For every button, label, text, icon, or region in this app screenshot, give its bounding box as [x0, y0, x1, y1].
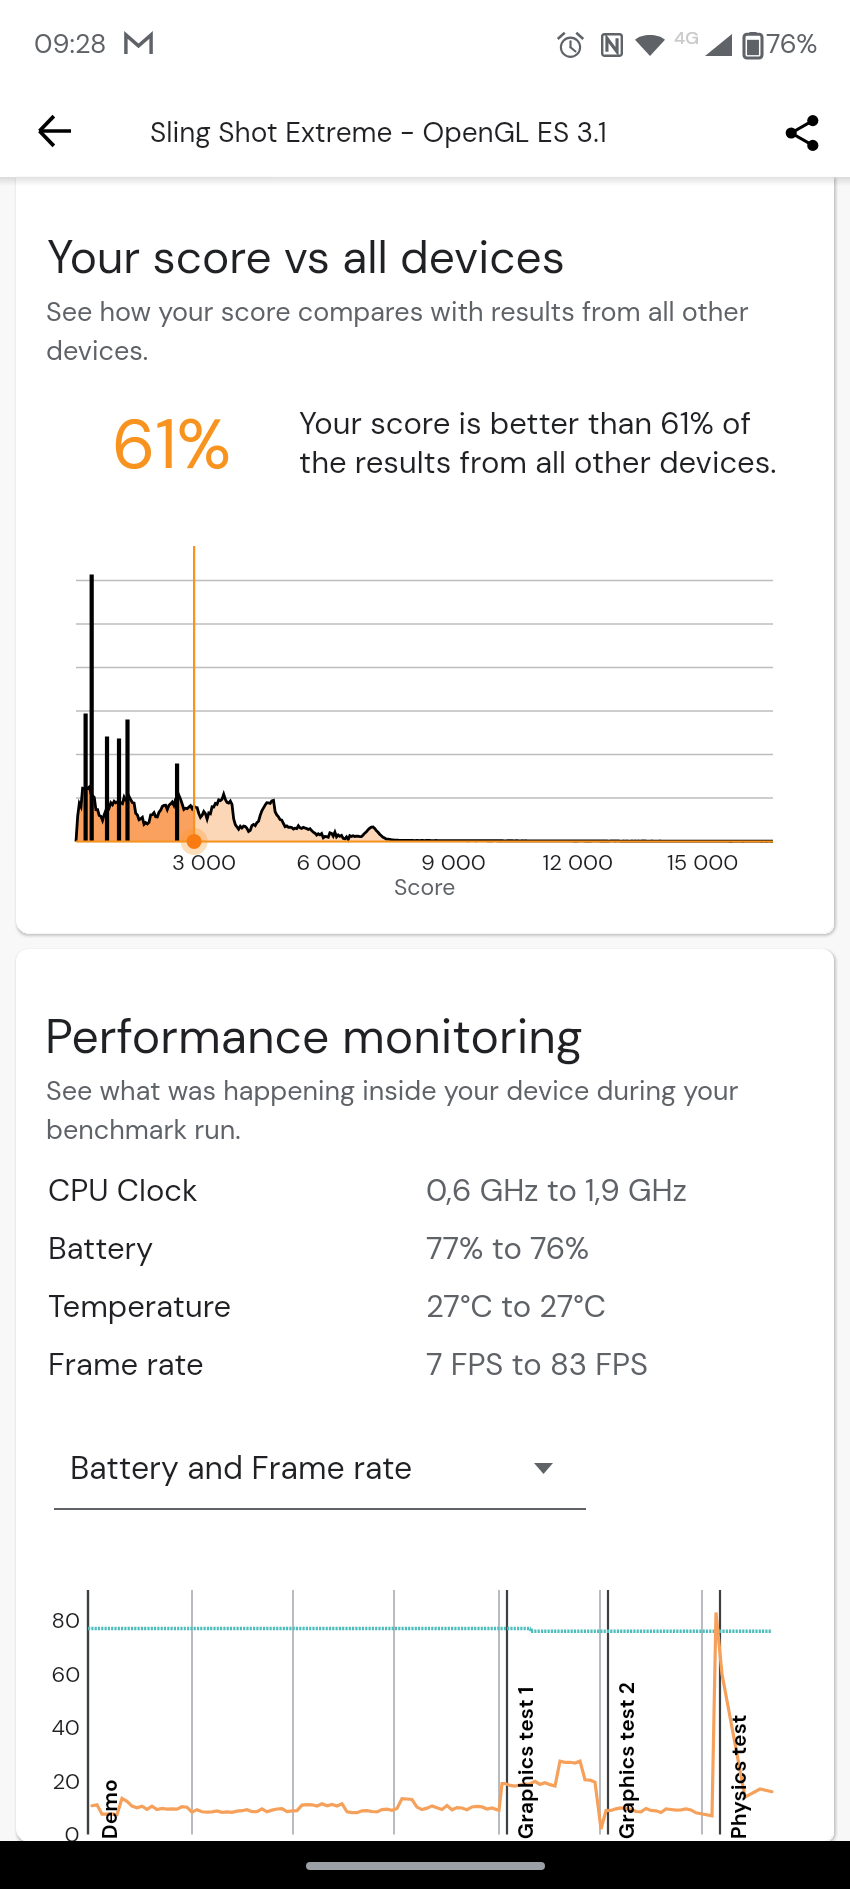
button[interactable]: Battery and Frame rate	[54, 1436, 586, 1500]
staticText: 61%	[112, 400, 232, 490]
staticText: Your score is better than 61% of the res…	[299, 403, 777, 483]
staticText: 76%	[766, 26, 818, 61]
staticText: Sling Shot Extreme - OpenGL ES 3.1	[150, 114, 607, 150]
button[interactable]: Back	[22, 99, 86, 163]
button[interactable]: Share	[770, 101, 834, 165]
staticText: 4G	[674, 26, 699, 49]
staticText: CPU Clock	[48, 1170, 198, 1210]
staticText: 7 FPS to 83 FPS	[426, 1344, 648, 1384]
staticText: See what was happening inside your devic…	[46, 1073, 739, 1147]
staticText: Frame rate	[48, 1344, 204, 1384]
staticText: See how your score compares with results…	[46, 294, 749, 368]
staticText: 0,6 GHz to 1,9 GHz	[426, 1170, 687, 1210]
staticText: Performance monitoring	[45, 1005, 583, 1067]
staticText: Your score vs all devices	[47, 227, 565, 287]
staticText: 09:28	[34, 26, 107, 61]
staticText: 77% to 76%	[426, 1228, 590, 1268]
staticText: 27°C to 27°C	[426, 1286, 607, 1326]
staticText: Battery	[48, 1228, 154, 1268]
staticText: Battery and Frame rate	[70, 1447, 413, 1489]
staticText: Temperature	[48, 1286, 232, 1326]
